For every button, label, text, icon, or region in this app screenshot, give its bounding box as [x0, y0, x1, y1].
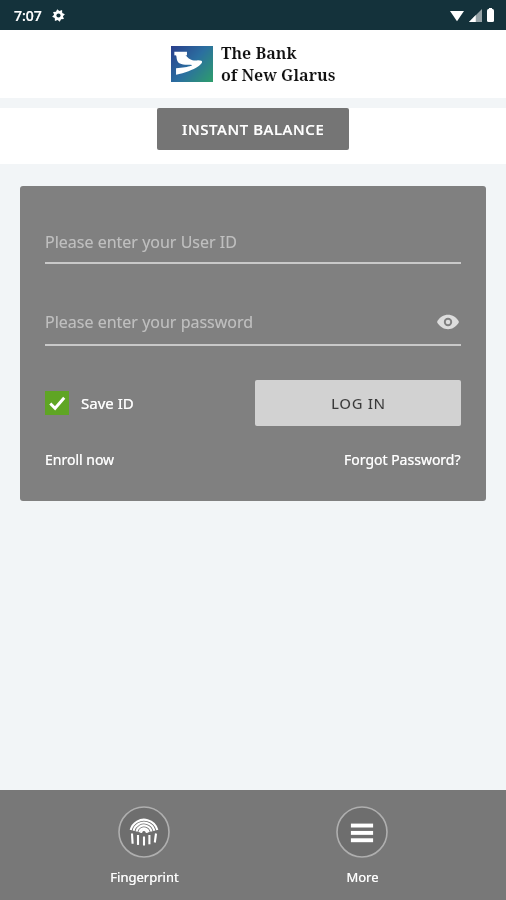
button[interactable]: Enroll now	[45, 450, 115, 469]
staticText: Fingerprint	[110, 868, 179, 886]
button[interactable]: Please enter your User ID	[45, 231, 461, 264]
button[interactable]: More options	[287, 806, 437, 886]
other: Fingerprint login	[129, 817, 159, 847]
staticText: Please enter your User ID	[45, 231, 237, 253]
staticText: LOG IN	[331, 393, 386, 413]
staticText: More	[346, 868, 379, 886]
button[interactable]: Please enter your password	[45, 309, 461, 346]
button[interactable]: Save ID	[45, 391, 134, 415]
other: More options	[347, 817, 377, 847]
staticText: Enroll now	[45, 450, 115, 469]
staticText: Forgot Password?	[344, 450, 461, 469]
button[interactable]: Forgot Password?	[344, 450, 461, 469]
staticText: Please enter your password	[45, 311, 254, 333]
button[interactable]: Fingerprint login	[69, 806, 219, 886]
staticText: INSTANT BALANCE	[182, 119, 325, 139]
button[interactable]: LOG IN	[255, 380, 461, 426]
staticText: The Bank	[221, 42, 297, 64]
button[interactable]: INSTANT BALANCE	[157, 108, 349, 150]
staticText: 7:07	[14, 6, 42, 25]
button[interactable]: Show password	[435, 309, 461, 335]
staticText: of New Glarus	[221, 64, 336, 86]
staticText: Save ID	[81, 393, 134, 413]
